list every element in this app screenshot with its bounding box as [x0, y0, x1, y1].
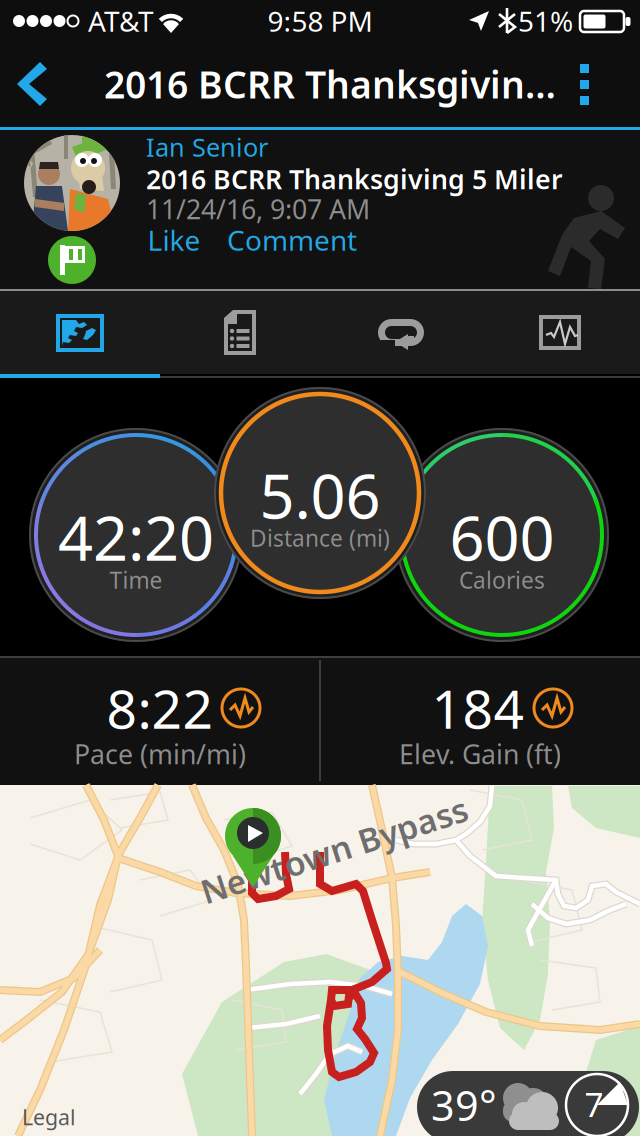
button[interactable]: Charts — [480, 290, 640, 376]
button[interactable]: Back — [0, 44, 96, 124]
staticText: Pace (min/mi) — [74, 736, 246, 772]
staticText: Newtown Bypass — [195, 828, 473, 872]
staticText: Legal — [22, 1103, 76, 1131]
staticText: 42:20 — [58, 496, 214, 578]
staticText: 2016 BCRR Thanksgivin… — [104, 59, 556, 109]
button[interactable]: More options — [552, 44, 632, 124]
staticText: Like — [147, 221, 200, 259]
staticText: 184 — [431, 673, 524, 743]
staticText: 9:58 PM — [267, 2, 372, 40]
staticText: 7 — [584, 1082, 603, 1126]
staticText: AT&T — [88, 2, 154, 40]
staticText: 600 — [449, 496, 554, 578]
button[interactable]: Map — [0, 290, 160, 376]
staticText: Distance (mi) — [250, 523, 390, 553]
staticText: Calories — [459, 565, 545, 595]
staticText: 5.06 — [259, 454, 380, 536]
staticText: Time — [109, 565, 162, 595]
button[interactable]: Comment — [227, 219, 357, 261]
button[interactable]: Laps — [320, 290, 480, 376]
staticText: Ian Senior — [146, 130, 268, 164]
staticText: Elev. Gain (ft) — [399, 736, 561, 772]
staticText: 51% — [518, 2, 573, 40]
staticText: Comment — [227, 221, 357, 259]
staticText: 8:22 — [106, 673, 213, 743]
staticText: 2016 BCRR Thanksgiving 5 Miler — [146, 161, 563, 197]
staticText: 11/24/16, 9:07 AM — [146, 191, 370, 227]
button[interactable]: Like — [138, 219, 210, 261]
button[interactable]: Details — [160, 290, 320, 376]
staticText: 39° — [431, 1078, 497, 1132]
